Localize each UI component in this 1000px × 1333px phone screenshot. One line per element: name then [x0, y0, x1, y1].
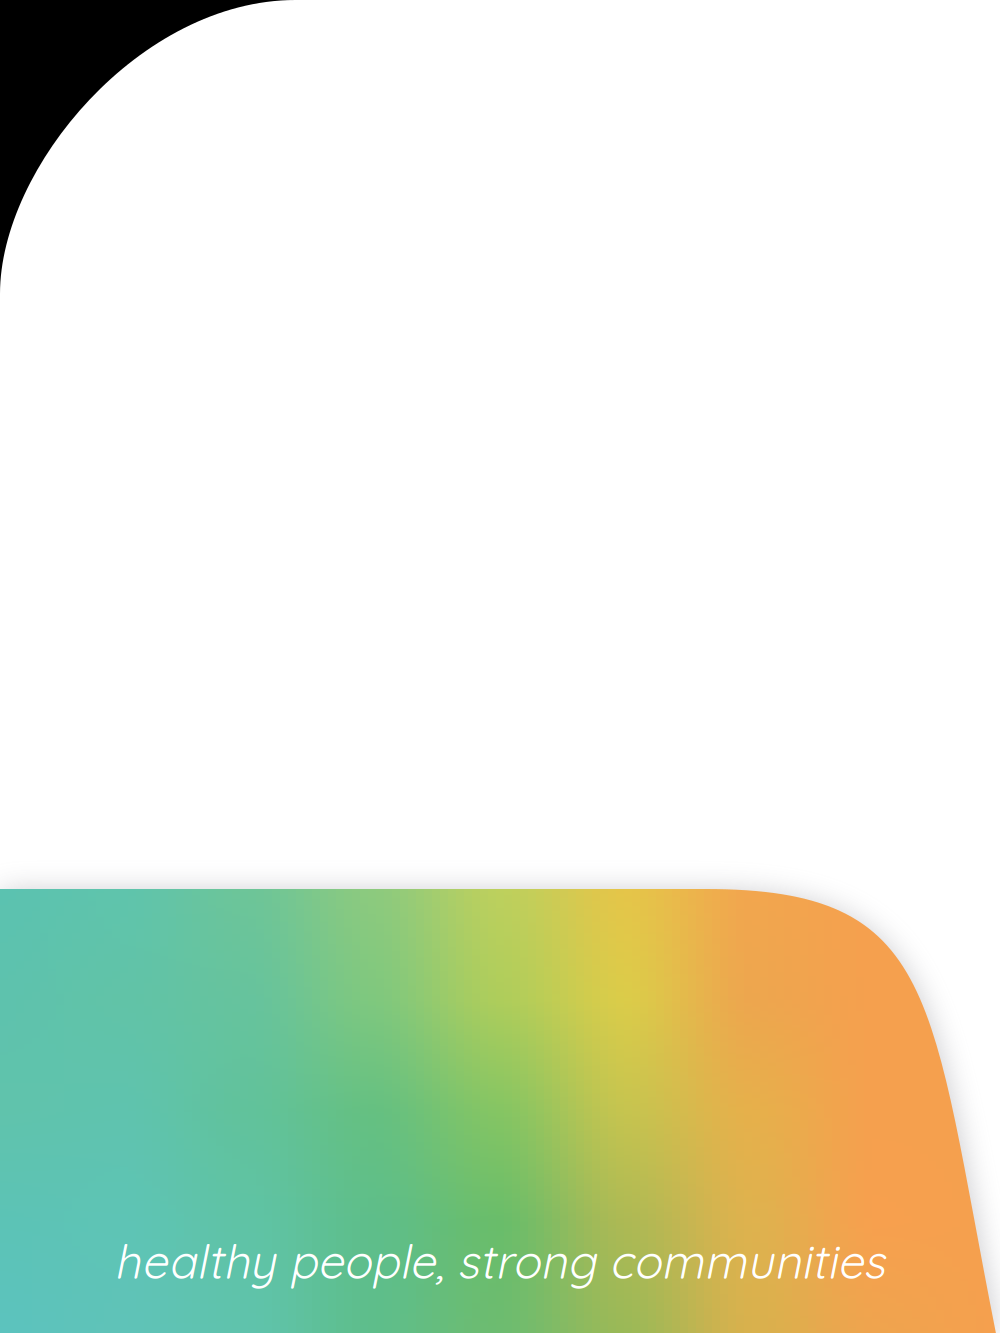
staticText: healthy people, strong communities [114, 1232, 885, 1290]
